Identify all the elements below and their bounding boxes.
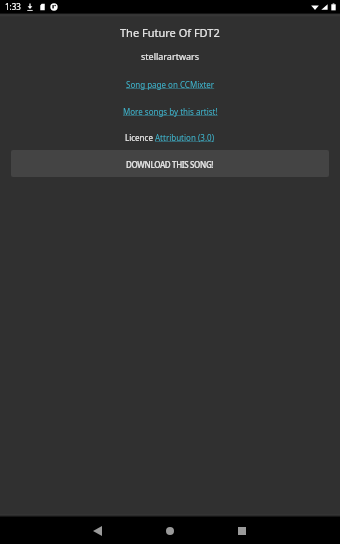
other: Note bbox=[39, 3, 46, 11]
other: Downloading bbox=[26, 3, 34, 11]
staticText: Licence bbox=[125, 132, 155, 143]
button[interactable]: Song page on CCMixter bbox=[126, 79, 215, 90]
button[interactable]: DOWNLOAD THIS SONG! bbox=[11, 150, 329, 177]
button[interactable]: Recent apps bbox=[218, 517, 266, 544]
other: Do not disturb bbox=[50, 3, 58, 11]
other: Mobile signal bbox=[321, 3, 328, 11]
other: Battery bbox=[331, 3, 336, 11]
button[interactable]: More songs by this artist! bbox=[123, 106, 218, 117]
button[interactable]: Back bbox=[73, 517, 121, 544]
staticText: 1:33 bbox=[5, 1, 21, 12]
staticText: The Future Of FDT2 bbox=[120, 25, 220, 40]
button[interactable]: Attribution (3.0) bbox=[155, 132, 215, 143]
button[interactable]: Home bbox=[146, 517, 194, 544]
staticText: stellarartwars bbox=[141, 50, 200, 62]
staticText: DOWNLOAD THIS SONG! bbox=[126, 159, 214, 170]
other: Wi-Fi bbox=[311, 3, 319, 11]
